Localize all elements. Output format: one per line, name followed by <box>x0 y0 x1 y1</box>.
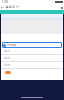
staticText: 설문조사 <box>5 5 19 9</box>
staticText: 옵션 <box>4 49 10 53</box>
button[interactable]: 선택됨 <box>2 42 62 48</box>
staticText: ← <box>1 5 5 10</box>
staticText: 옵션 <box>4 63 10 67</box>
staticText: 선택됨 <box>7 43 16 47</box>
staticText: 옵션 <box>4 56 10 60</box>
staticText: 1:08 <box>2 0 8 4</box>
button[interactable]: Back <box>0 5 5 10</box>
button[interactable]: 옵션 <box>1 62 63 68</box>
button[interactable]: 옵션 <box>1 55 63 61</box>
button[interactable]: 옵션 <box>1 48 63 54</box>
button[interactable]: More <box>59 5 64 10</box>
button[interactable] <box>5 71 11 74</box>
